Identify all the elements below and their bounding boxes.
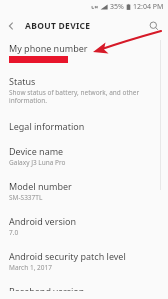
button[interactable]: Back	[0, 15, 22, 37]
button[interactable]: Status	[0, 69, 168, 113]
button[interactable]: Model number	[0, 175, 168, 210]
staticText: 35%	[110, 2, 124, 12]
button[interactable]: Device name	[0, 140, 168, 175]
staticText: 7.0	[9, 228, 19, 237]
button[interactable]: Android security patch level	[0, 245, 168, 280]
staticText: Device name	[9, 145, 64, 157]
staticText: Android security patch level	[9, 250, 126, 262]
button[interactable]: Android version	[0, 210, 168, 245]
staticText: March 1, 2017	[9, 263, 52, 272]
staticText: Galaxy J3 Luna Pro	[9, 158, 66, 167]
button[interactable]: Search	[144, 16, 164, 36]
staticText: Show status of battery, network, and oth…	[9, 88, 156, 105]
staticText: SM-S337TL	[9, 193, 43, 202]
staticText: Model number	[9, 180, 72, 192]
staticText: Legal information	[9, 120, 85, 132]
staticText: ABOUT DEVICE	[25, 20, 91, 32]
staticText: Status	[9, 75, 36, 87]
staticText: Android version	[9, 215, 77, 227]
staticText: Baseband version	[9, 285, 85, 291]
staticText: My phone number	[9, 42, 88, 54]
button[interactable]: Legal information	[0, 113, 168, 140]
staticText: 12:04 PM	[133, 2, 164, 12]
button[interactable]: My phone number	[0, 38, 168, 69]
button[interactable]: Baseband version	[0, 280, 168, 299]
